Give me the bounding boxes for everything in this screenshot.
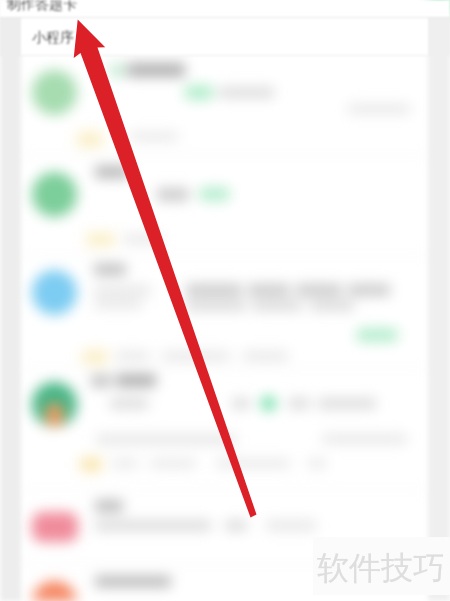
button[interactable]: Search <box>429 0 450 12</box>
button[interactable] <box>0 156 450 255</box>
button[interactable]: 小程序 <box>21 18 428 55</box>
staticText: 制作答题卡 <box>7 0 77 13</box>
button[interactable] <box>0 256 450 368</box>
button[interactable] <box>0 565 450 601</box>
button[interactable]: 制作答题卡 <box>0 0 450 17</box>
staticText: 小程序 <box>32 29 74 47</box>
button[interactable] <box>0 56 450 155</box>
button[interactable] <box>0 369 450 489</box>
button[interactable] <box>0 490 450 564</box>
staticText: 软件技巧 <box>317 548 445 588</box>
